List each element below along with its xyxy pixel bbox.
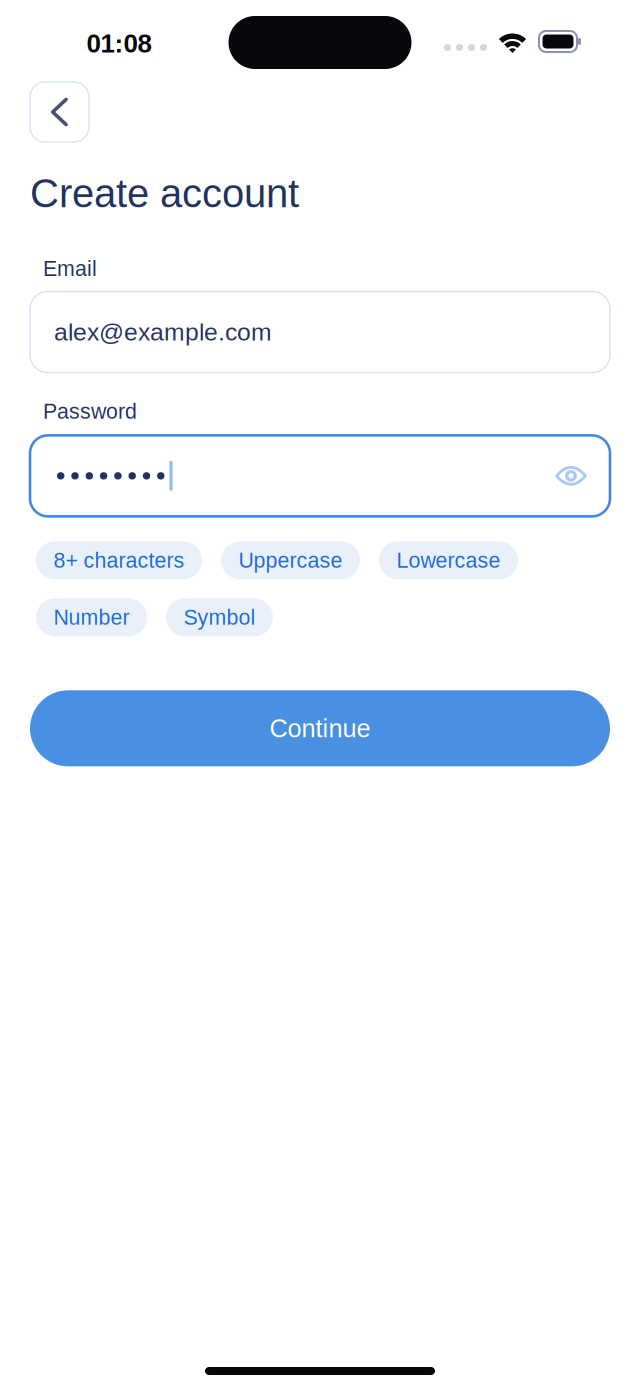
button[interactable]: Uppercase <box>221 541 360 579</box>
button[interactable]: Show password <box>544 443 598 509</box>
staticText: Number <box>53 605 129 629</box>
staticText: Password <box>43 399 137 423</box>
staticText: 8+ characters <box>53 548 184 572</box>
staticText: Uppercase <box>238 548 342 572</box>
button[interactable]: Lowercase <box>379 541 518 579</box>
button[interactable]: Password field <box>30 435 610 516</box>
staticText: Lowercase <box>396 548 500 572</box>
staticText: 01:08 <box>86 29 151 58</box>
staticText: Symbol <box>183 605 255 629</box>
button[interactable]: Symbol <box>166 598 273 636</box>
button[interactable]: Number <box>36 598 147 636</box>
button[interactable]: alex@example.com <box>30 291 610 372</box>
staticText: alex@example.com <box>54 318 272 346</box>
staticText: Create account <box>30 171 299 216</box>
staticText: Email <box>43 257 97 280</box>
button[interactable]: Back <box>30 82 89 142</box>
button[interactable]: 8+ characters <box>36 541 202 579</box>
staticText: Continue <box>269 714 370 742</box>
button[interactable]: Continue <box>30 690 610 766</box>
